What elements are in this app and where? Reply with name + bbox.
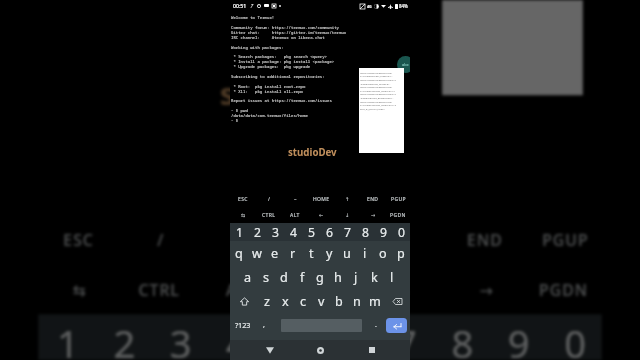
button[interactable]: ← xyxy=(282,264,364,315)
button[interactable]: ALT xyxy=(282,207,308,223)
staticText: ESC xyxy=(63,230,95,252)
button[interactable]: HOME xyxy=(282,214,364,264)
button[interactable]: CTRL xyxy=(256,207,282,223)
button[interactable]: Recents xyxy=(346,340,397,360)
button[interactable]: 9 xyxy=(374,223,392,241)
button[interactable]: r xyxy=(284,241,302,265)
staticText: s xyxy=(263,269,270,286)
staticText: Welcome to Termux! Community forum: http… xyxy=(231,15,346,123)
button[interactable]: PGUP xyxy=(527,214,602,264)
staticText: ?123 xyxy=(235,320,251,330)
button[interactable]: s xyxy=(257,265,275,289)
button[interactable]: v xyxy=(312,289,330,313)
button[interactable]: ALT xyxy=(201,264,282,315)
button[interactable]: c xyxy=(294,289,312,313)
button[interactable]: 3 xyxy=(151,315,207,360)
button[interactable]: Home xyxy=(295,340,346,360)
staticText: t xyxy=(309,245,314,262)
button[interactable]: 6 xyxy=(320,223,338,241)
button[interactable]: 3 xyxy=(266,223,284,241)
button[interactable]: z xyxy=(258,289,276,313)
button[interactable]: f xyxy=(293,265,311,289)
button[interactable]: 1 xyxy=(38,315,95,360)
button[interactable]: 7 xyxy=(338,223,356,241)
button[interactable]: m xyxy=(366,289,384,313)
button[interactable]: t xyxy=(302,241,320,265)
button[interactable]: i xyxy=(356,241,374,265)
button[interactable]: 2 xyxy=(248,223,266,241)
button[interactable]: PGDN xyxy=(386,207,410,223)
button[interactable]: 9 xyxy=(489,315,545,360)
button[interactable]: 6 xyxy=(320,315,376,360)
staticText: g xyxy=(316,269,324,286)
button[interactable]: ⇆ xyxy=(38,264,120,315)
button[interactable]: d xyxy=(275,265,293,289)
button[interactable]: 2 xyxy=(95,315,151,360)
button[interactable]: ↑ xyxy=(364,214,445,264)
button[interactable]: ESC xyxy=(38,214,120,264)
button[interactable]: ↓ xyxy=(334,207,360,223)
button[interactable]: 7 xyxy=(376,315,433,360)
button[interactable]: 4 xyxy=(284,223,302,241)
staticText: – xyxy=(294,196,297,203)
button[interactable]: j xyxy=(347,265,365,289)
staticText: p xyxy=(397,245,405,262)
staticText: 0 xyxy=(564,318,586,360)
button[interactable]: k xyxy=(365,265,383,289)
button[interactable]: , xyxy=(256,313,272,337)
button[interactable]: PGUP xyxy=(386,191,410,207)
button[interactable]: ?123 xyxy=(230,313,256,337)
button[interactable]: ↑ xyxy=(334,191,360,207)
button[interactable]: ↓ xyxy=(364,264,445,315)
button[interactable]: / xyxy=(256,191,282,207)
staticText: a xyxy=(244,269,252,286)
button[interactable]: HOME xyxy=(308,191,334,207)
button[interactable]: q xyxy=(230,241,248,265)
button[interactable]: w xyxy=(248,241,266,265)
button[interactable]: Space xyxy=(272,313,370,337)
button[interactable]: 5 xyxy=(264,315,320,360)
button[interactable]: n xyxy=(348,289,366,313)
button[interactable]: – xyxy=(201,214,282,264)
button[interactable]: 1 xyxy=(230,223,248,241)
button[interactable]: h xyxy=(329,265,347,289)
staticText: 9 xyxy=(508,318,530,360)
button[interactable]: 5 xyxy=(302,223,320,241)
button[interactable]: → xyxy=(360,207,386,223)
button[interactable]: 8 xyxy=(356,223,374,241)
button[interactable]: p xyxy=(392,241,410,265)
staticText: 9 xyxy=(380,224,387,241)
button[interactable]: b xyxy=(330,289,348,313)
staticText: ⇆ xyxy=(241,212,246,218)
button[interactable]: CTRL xyxy=(120,264,201,315)
button[interactable]: Backspace xyxy=(384,289,410,313)
button[interactable]: Shift xyxy=(230,289,258,313)
button[interactable]: – xyxy=(282,191,308,207)
button[interactable]: ← xyxy=(308,207,334,223)
button[interactable]: ESC xyxy=(230,191,256,207)
button[interactable]: END xyxy=(445,214,527,264)
button[interactable]: Enter xyxy=(382,313,410,337)
button[interactable]: 8 xyxy=(433,315,489,360)
button[interactable]: o xyxy=(374,241,392,265)
button[interactable]: Back xyxy=(244,340,295,360)
button[interactable]: 0 xyxy=(392,223,410,241)
button[interactable]: u xyxy=(338,241,356,265)
button[interactable]: x xyxy=(276,289,294,313)
button[interactable]: y xyxy=(320,241,338,265)
button[interactable]: 4 xyxy=(207,315,264,360)
staticText: 4G xyxy=(367,4,372,9)
button[interactable]: l xyxy=(383,265,401,289)
button[interactable]: . xyxy=(370,313,382,337)
staticText: ↓ xyxy=(398,280,414,299)
button[interactable]: 0 xyxy=(545,315,602,360)
button[interactable]: PGDN xyxy=(527,264,602,315)
button[interactable]: → xyxy=(445,264,527,315)
button[interactable]: END xyxy=(360,191,386,207)
button[interactable]: a xyxy=(239,265,257,289)
button[interactable]: / xyxy=(120,214,201,264)
button[interactable]: ⇆ xyxy=(230,207,256,223)
button[interactable]: e xyxy=(266,241,284,265)
staticText: 2 xyxy=(113,318,135,360)
button[interactable]: g xyxy=(311,265,329,289)
